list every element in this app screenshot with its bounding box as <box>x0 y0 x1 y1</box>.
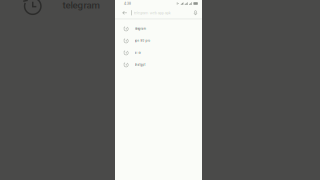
button[interactable]: telegram <box>115 23 202 35</box>
staticText: ai cv <box>134 51 140 55</box>
button[interactable]: chatgpt <box>115 59 202 71</box>
staticText: telegram <box>134 27 145 31</box>
button[interactable]: vpn 80 pro <box>115 35 202 47</box>
staticText: telegram <box>62 0 99 11</box>
staticText: vpn 80 pro <box>134 39 150 43</box>
button[interactable]: Back <box>119 7 130 19</box>
staticText: chatgpt <box>134 63 145 67</box>
button[interactable]: Voice search <box>191 7 199 19</box>
button[interactable]: ai cv <box>115 47 202 59</box>
staticText: 4:38 <box>124 1 131 6</box>
staticText: telegram web app apk <box>134 10 171 15</box>
